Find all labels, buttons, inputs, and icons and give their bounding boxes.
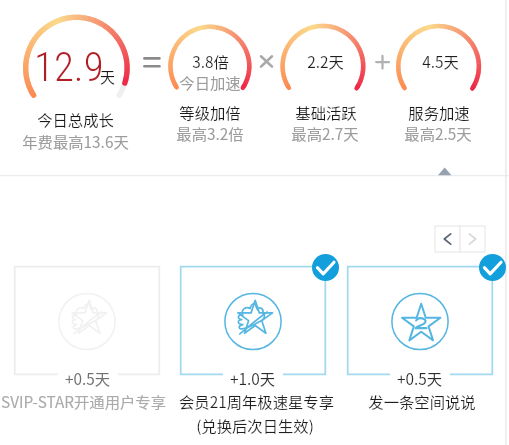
staticText: 基础活跃 <box>295 101 357 123</box>
staticText: +1.0天 <box>230 367 276 389</box>
staticText: 会员21周年极速星专享 <box>179 390 334 412</box>
staticText: (兑换后次日生效) <box>196 414 314 436</box>
staticText: 天 <box>100 66 116 88</box>
staticText: 年费最高13.6天 <box>22 130 129 152</box>
button[interactable]: Next <box>460 226 485 252</box>
staticText: 今日总成长 <box>37 108 114 130</box>
button[interactable]: 发一条空间说说 +0.5天 <box>347 266 493 406</box>
staticText: 最高2.5天 <box>404 122 472 144</box>
staticText: 今日加速 <box>179 71 241 93</box>
button[interactable]: Selected <box>479 254 506 281</box>
staticText: 等级加倍 <box>179 101 241 123</box>
staticText: 4.5天 <box>422 50 459 72</box>
staticText: 2.2天 <box>307 50 344 72</box>
staticText: +0.5天 <box>65 367 111 389</box>
staticText: 最高2.7天 <box>291 122 359 144</box>
staticText: 3.8倍 <box>192 50 229 72</box>
staticText: 最高3.2倍 <box>176 122 244 144</box>
staticText: 12.9 <box>34 43 104 91</box>
button[interactable]: Previous <box>435 226 460 252</box>
staticText: 发一条空间说说 <box>368 390 476 412</box>
button[interactable]: Collapse <box>433 163 456 177</box>
button[interactable]: SVIP-STAR开通用户专享 +0.5天 <box>14 266 160 406</box>
button[interactable]: Selected <box>312 254 339 281</box>
button[interactable]: 会员21周年极速星专享 +1.0天 <box>180 266 326 406</box>
staticText: 服务加速 <box>408 101 470 123</box>
staticText: +0.5天 <box>397 367 443 389</box>
staticText: SVIP-STAR开通用户专享 <box>1 390 166 412</box>
